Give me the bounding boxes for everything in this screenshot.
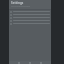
staticText: Account and privacy [11, 5, 30, 8]
staticText: Settings [11, 1, 24, 5]
button[interactable]: Item icon [9, 22, 51, 25]
button[interactable]: Item icon [9, 16, 51, 19]
button[interactable]: Settings [10, 1, 50, 5]
button[interactable]: Item icon [9, 10, 51, 13]
button[interactable]: Item icon [9, 13, 51, 16]
button[interactable]: Item icon [9, 19, 51, 22]
